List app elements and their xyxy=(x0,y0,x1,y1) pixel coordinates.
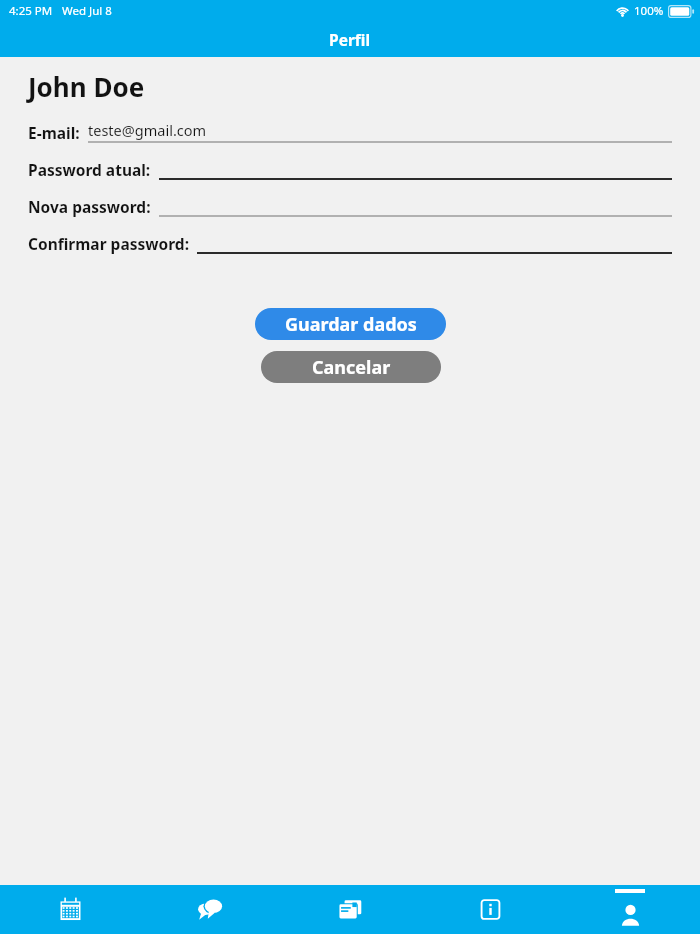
staticText: 100% xyxy=(634,3,664,19)
button[interactable]: Guardar dados xyxy=(255,308,446,340)
button[interactable]: Messages xyxy=(140,885,280,934)
staticText: 4:25 PM xyxy=(9,3,53,19)
button[interactable]: Calendar xyxy=(0,885,140,934)
staticText: teste@gmail.com xyxy=(88,120,207,140)
staticText: Guardar dados xyxy=(285,312,417,337)
staticText: Confirmar password: xyxy=(28,233,189,254)
button[interactable]: E-mail: xyxy=(0,114,700,151)
button[interactable]: Confirmar password: xyxy=(0,225,700,262)
staticText: Password atual: xyxy=(28,159,151,180)
button[interactable]: Cancelar xyxy=(261,351,441,383)
button[interactable]: Info xyxy=(420,885,560,934)
staticText: E-mail: xyxy=(28,122,80,143)
staticText: John Doe xyxy=(28,69,145,104)
button[interactable]: Nova password: xyxy=(0,188,700,225)
staticText: Wed Jul 8 xyxy=(62,3,112,19)
staticText: Perfil xyxy=(329,29,371,50)
button[interactable]: Password atual: xyxy=(0,151,700,188)
button[interactable]: Cards xyxy=(280,885,420,934)
staticText: Cancelar xyxy=(312,355,391,380)
staticText: Nova password: xyxy=(28,196,151,217)
button[interactable]: Profile xyxy=(560,885,700,934)
